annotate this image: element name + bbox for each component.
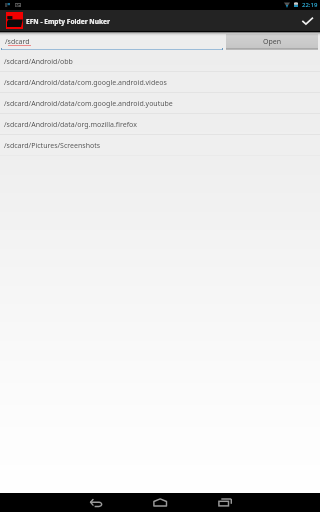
button[interactable]: Open xyxy=(226,34,318,50)
staticText: /sdcard/Android/data/com.google.android.… xyxy=(4,78,167,88)
staticText: /sdcard xyxy=(5,37,30,47)
staticText: 22:19 xyxy=(302,1,318,9)
button[interactable]: Home xyxy=(144,493,176,512)
staticText: /sdcard/Android/data/com.google.android.… xyxy=(4,99,173,109)
button[interactable]: /sdcard/Android/obb xyxy=(0,51,320,72)
staticText: /sdcard/Android/obb xyxy=(4,57,73,67)
staticText: EFN - Empty Folder Nuker xyxy=(26,17,110,26)
staticText: Open xyxy=(263,37,282,47)
button[interactable]: Recent apps xyxy=(209,493,241,512)
button[interactable]: Back xyxy=(80,493,112,512)
button[interactable]: /sdcard/Android/data/com.google.android.… xyxy=(0,72,320,93)
button[interactable]: /sdcard/Pictures/Screenshots xyxy=(0,135,320,156)
staticText: /sdcard/Pictures/Screenshots xyxy=(4,141,101,151)
button[interactable]: Done xyxy=(294,10,320,32)
button[interactable]: /sdcard/Android/data/com.google.android.… xyxy=(0,93,320,114)
staticText: /sdcard/Android/data/org.mozilla.firefox xyxy=(4,120,137,130)
button[interactable]: /sdcard/Android/data/org.mozilla.firefox xyxy=(0,114,320,135)
